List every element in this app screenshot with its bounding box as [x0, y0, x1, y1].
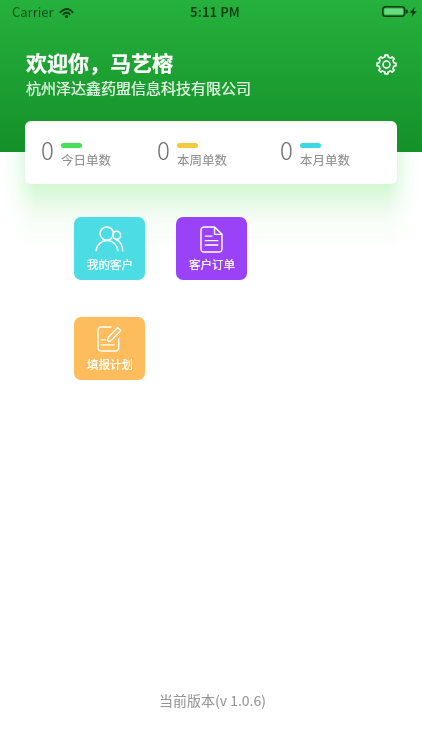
staticText: 当前版本(v 1.0.6)	[159, 690, 266, 710]
staticText: 客户订单	[189, 256, 235, 273]
staticText: 本周单数	[177, 150, 228, 168]
button[interactable]: 填报计划	[74, 317, 145, 380]
staticText: 填报计划	[87, 356, 133, 373]
staticText: 本月单数	[300, 150, 351, 168]
staticText: 0	[157, 132, 170, 167]
staticText: 今日单数	[61, 150, 112, 168]
staticText: 5:11 PM	[190, 2, 240, 21]
staticText: 0	[41, 132, 54, 167]
button[interactable]: Settings	[366, 44, 407, 85]
button[interactable]: 客户订单	[176, 217, 247, 280]
staticText: 欢迎你，马艺榕	[26, 47, 173, 77]
staticText: Carrier	[12, 2, 54, 21]
staticText: 0	[280, 132, 293, 167]
staticText: 杭州泽达鑫药盟信息科技有限公司	[26, 77, 252, 99]
staticText: 我的客户	[87, 256, 133, 273]
button[interactable]: 我的客户	[74, 217, 145, 280]
